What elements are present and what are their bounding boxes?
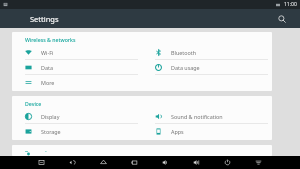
button[interactable]: Sound & notification bbox=[142, 109, 272, 123]
staticText: More bbox=[41, 79, 55, 86]
staticText: Personal bbox=[25, 149, 47, 152]
button[interactable]: Apps bbox=[142, 124, 272, 138]
button[interactable]: Volume down bbox=[150, 156, 181, 169]
button[interactable]: Data bbox=[12, 60, 142, 74]
button[interactable]: Screenshot bbox=[26, 156, 57, 169]
button[interactable]: Storage bbox=[12, 124, 142, 138]
staticText: 11:00 bbox=[284, 1, 297, 8]
staticText: Sound & notification bbox=[171, 113, 223, 120]
button[interactable]: Power bbox=[212, 156, 243, 169]
button[interactable]: Wi-Fi bbox=[12, 45, 142, 59]
button[interactable]: Bluetooth bbox=[142, 45, 272, 59]
button[interactable]: Display bbox=[12, 109, 142, 123]
staticText: Apps bbox=[171, 128, 184, 135]
button[interactable]: More bbox=[12, 75, 142, 89]
staticText: Wireless & networks bbox=[25, 36, 76, 43]
staticText: Storage bbox=[41, 128, 61, 135]
staticText: Settings bbox=[30, 14, 59, 24]
staticText: Data bbox=[41, 64, 53, 71]
staticText: Device bbox=[25, 100, 42, 107]
button[interactable]: Recents bbox=[119, 156, 150, 169]
button[interactable]: Volume up bbox=[181, 156, 212, 169]
staticText: Display bbox=[41, 113, 60, 120]
button[interactable]: Data usage bbox=[142, 60, 272, 74]
staticText: Data usage bbox=[171, 64, 200, 71]
button[interactable]: Home bbox=[88, 156, 119, 169]
staticText: Wi-Fi bbox=[41, 49, 54, 56]
button[interactable]: Menu bbox=[243, 156, 274, 169]
button[interactable]: Back bbox=[57, 156, 88, 169]
staticText: Bluetooth bbox=[171, 49, 197, 56]
button[interactable]: Search bbox=[272, 9, 291, 28]
